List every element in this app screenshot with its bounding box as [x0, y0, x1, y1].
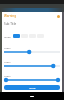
- staticText: Apply: [29, 86, 36, 89]
- staticText: Mode: [4, 35, 11, 38]
- button[interactable]: Apply: [4, 85, 60, 90]
- button[interactable]: [13, 34, 20, 38]
- staticText: Label: [4, 60, 11, 63]
- staticText: Sub Title: [4, 22, 17, 26]
- staticText: Label: [4, 74, 11, 77]
- staticText: Label: [4, 46, 11, 49]
- staticText: Warning: [4, 14, 16, 18]
